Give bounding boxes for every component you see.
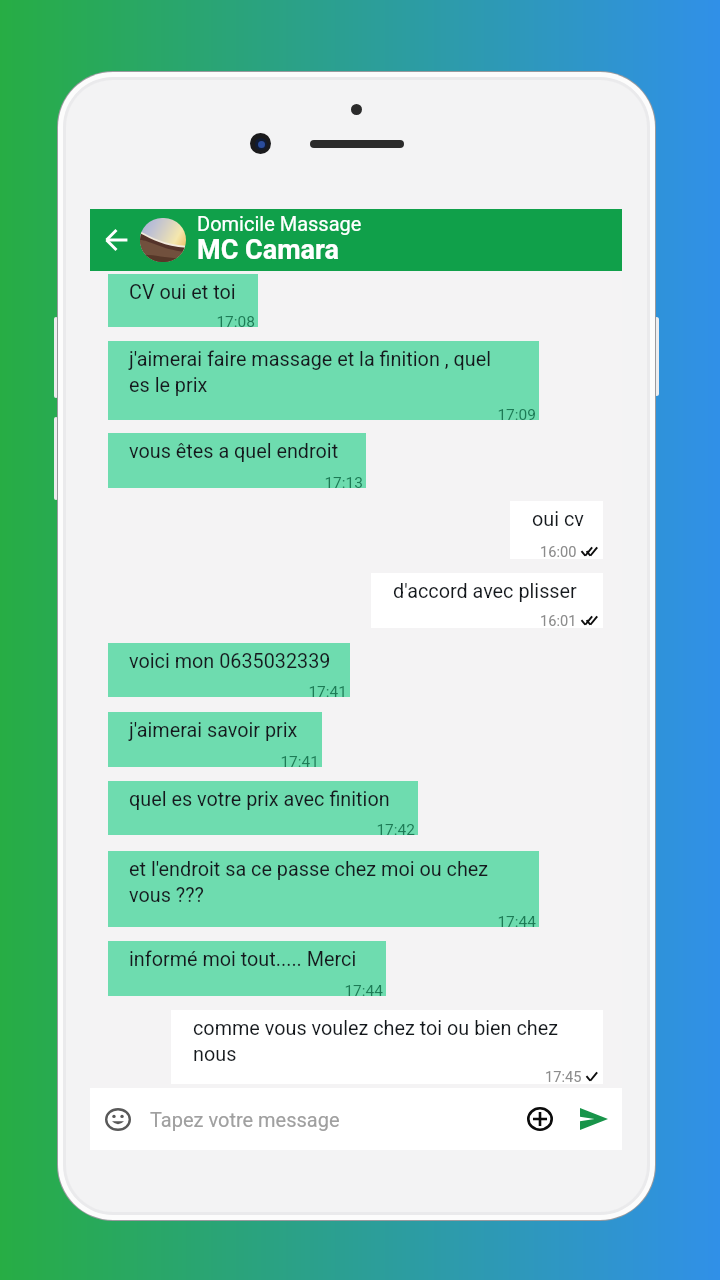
staticText: 17:41: [280, 753, 319, 771]
button[interactable]: oui cv: [510, 501, 603, 559]
button[interactable]: et l'endroit sa ce passe chez moi ou che…: [108, 851, 539, 927]
button[interactable]: comme vous voulez chez toi ou bien chez …: [171, 1010, 603, 1084]
staticText: informé moi tout..... Merci: [129, 948, 357, 971]
button[interactable]: informé moi tout..... Merci: [108, 941, 386, 996]
staticText: Tapez votre message: [150, 1108, 340, 1131]
staticText: 16:01: [540, 612, 577, 629]
staticText: Domicile Massage: [197, 212, 362, 235]
button[interactable]: quel es votre prix avec finition: [108, 781, 418, 835]
staticText: j'aimerai savoir prix: [129, 719, 298, 742]
staticText: 17:44: [497, 913, 536, 931]
button[interactable]: Send: [573, 1098, 615, 1140]
button[interactable]: j'aimerai savoir prix: [108, 712, 322, 767]
button[interactable]: Attach: [519, 1098, 561, 1140]
staticText: CV oui et toi: [129, 281, 236, 304]
staticText: voici mon 0635032339: [129, 650, 331, 673]
staticText: d'accord avec plisser: [393, 580, 577, 603]
button[interactable]: Back: [94, 218, 138, 262]
staticText: comme vous voulez chez toi ou bien chez …: [193, 1017, 559, 1066]
staticText: quel es votre prix avec finition: [129, 788, 390, 811]
button[interactable]: Back: [90, 209, 622, 271]
staticText: 17:45: [545, 1068, 582, 1085]
staticText: 17:41: [308, 683, 347, 701]
staticText: 17:09: [497, 406, 536, 424]
staticText: 17:42: [376, 821, 415, 839]
staticText: vous êtes a quel endroit: [129, 440, 339, 463]
staticText: 17:13: [324, 474, 363, 492]
staticText: 17:08: [216, 313, 255, 331]
button[interactable]: vous êtes a quel endroit: [108, 433, 366, 488]
staticText: j'aimerai faire massage et la finition ,…: [129, 348, 492, 397]
staticText: et l'endroit sa ce passe chez moi ou che…: [129, 858, 489, 907]
button[interactable]: CV oui et toi: [108, 274, 258, 327]
staticText: 17:44: [344, 982, 383, 1000]
button[interactable]: d'accord avec plisser: [371, 573, 603, 628]
button[interactable]: Emoji: [97, 1098, 139, 1140]
staticText: oui cv: [532, 508, 584, 531]
button[interactable]: j'aimerai faire massage et la finition ,…: [108, 341, 539, 420]
button[interactable]: voici mon 0635032339: [108, 643, 350, 697]
staticText: MC Camara: [197, 234, 339, 266]
staticText: 16:00: [540, 543, 577, 560]
